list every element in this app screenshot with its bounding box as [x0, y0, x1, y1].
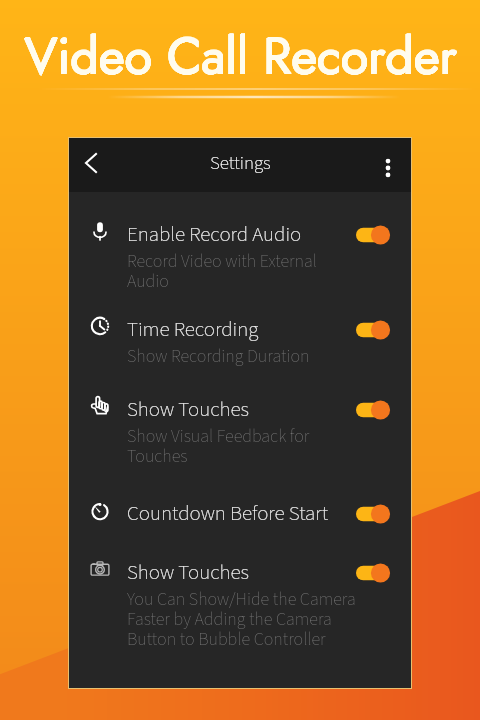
staticText: Video Call Recorder: [1, 20, 480, 92]
staticText: Video Call Recorder: [1, 20, 480, 92]
staticText: Countdown Before Start: [127, 498, 329, 528]
button[interactable]: Show Touches: [69, 557, 411, 653]
button[interactable]: Show Touches: [69, 394, 411, 470]
staticText: Show Visual Feedback for Touches: [127, 424, 359, 470]
staticText: Settings: [210, 150, 271, 177]
staticText: Video Call Recorder: [0, 20, 480, 92]
staticText: Time Recording: [127, 314, 259, 344]
button[interactable]: Toggle Show Touches: [349, 560, 393, 586]
staticText: Video Call Recorder: [0, 20, 480, 92]
staticText: Video Call Recorder: [1, 19, 480, 91]
button[interactable]: Enable Record Audio: [69, 219, 411, 295]
button[interactable]: Toggle Enable Record Audio: [349, 222, 393, 248]
staticText: Video Call Recorder: [1, 20, 480, 92]
button[interactable]: More options: [366, 146, 410, 190]
staticText: Show Touches: [127, 557, 249, 587]
staticText: Show Touches: [127, 394, 249, 424]
button[interactable]: Time Recording: [69, 314, 411, 370]
button[interactable]: Toggle Show Touches: [349, 397, 393, 423]
button[interactable]: Toggle Countdown Before Start: [349, 501, 393, 527]
button[interactable]: Toggle Time Recording: [349, 317, 393, 343]
button[interactable]: Countdown Before Start: [69, 498, 411, 528]
button[interactable]: Back: [69, 141, 113, 185]
staticText: Enable Record Audio: [127, 219, 302, 249]
staticText: You Can Show/Hide the Camera Faster by A…: [127, 587, 359, 653]
staticText: Show Recording Duration: [127, 344, 310, 370]
staticText: Record Video with External Audio: [127, 249, 359, 295]
